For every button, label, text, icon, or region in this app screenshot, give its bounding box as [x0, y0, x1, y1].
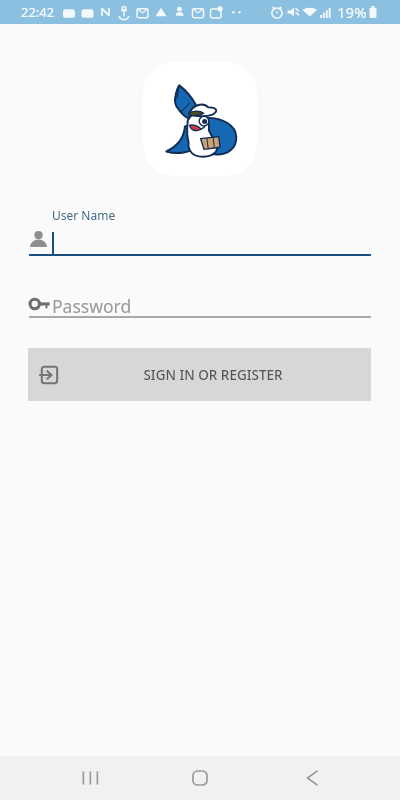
staticText: User Name — [52, 207, 116, 223]
button[interactable]: Back — [289, 756, 335, 800]
button[interactable]: Recent apps — [66, 756, 112, 800]
staticText: Password — [52, 294, 132, 316]
staticText: 19% — [337, 2, 367, 22]
button[interactable]: Home — [177, 756, 223, 800]
staticText: SIGN IN OR REGISTER — [143, 366, 283, 384]
button[interactable]: SIGN IN OR REGISTER — [28, 348, 371, 401]
staticText: 22:42 — [21, 3, 55, 21]
